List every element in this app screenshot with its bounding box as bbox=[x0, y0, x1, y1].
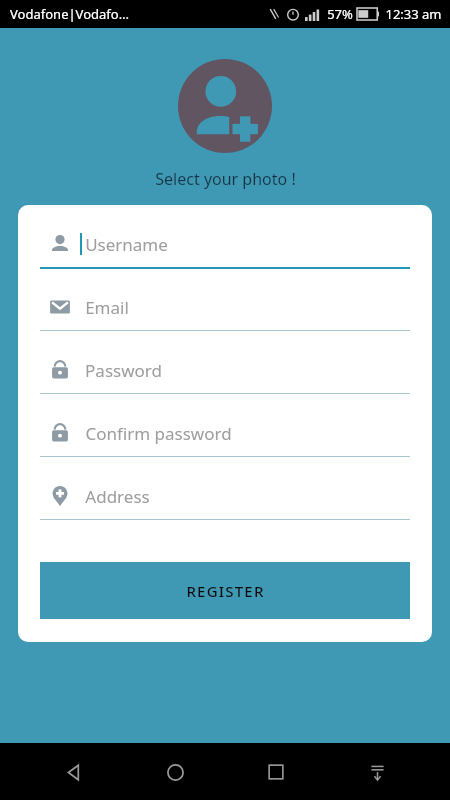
button[interactable]: Home bbox=[152, 749, 198, 795]
button[interactable]: Password bbox=[40, 349, 410, 412]
staticText: 57% bbox=[327, 5, 353, 23]
staticText: Address bbox=[85, 485, 150, 508]
button[interactable]: Select your photo bbox=[178, 59, 272, 153]
button[interactable]: Hide keyboard bbox=[354, 749, 400, 795]
staticText: Vodafone|Vodafo… bbox=[10, 5, 129, 23]
staticText: Confirm password bbox=[85, 422, 232, 445]
button[interactable]: Back bbox=[51, 749, 97, 795]
staticText: Username bbox=[85, 233, 168, 256]
button[interactable]: Username bbox=[40, 223, 410, 286]
staticText: Email bbox=[85, 296, 129, 319]
button[interactable]: REGISTER bbox=[40, 562, 410, 619]
staticText: REGISTER bbox=[186, 581, 265, 601]
button[interactable]: Confirm password bbox=[40, 412, 410, 475]
button[interactable]: Recents bbox=[253, 749, 299, 795]
staticText: Password bbox=[85, 359, 162, 382]
staticText: Select your photo ! bbox=[155, 168, 296, 190]
button[interactable]: Address bbox=[40, 475, 410, 538]
button[interactable]: Email bbox=[40, 286, 410, 349]
staticText: 12:33 am bbox=[385, 5, 442, 23]
